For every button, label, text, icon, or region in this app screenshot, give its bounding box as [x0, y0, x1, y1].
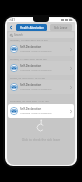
button[interactable]: Sick Leave [50, 24, 72, 31]
staticText: Health Attestation [20, 26, 44, 30]
button[interactable]: Self-Declaration [8, 80, 74, 94]
staticText: Search [14, 33, 23, 37]
staticText: Thursday, 08 April 2021 11:31 am [10, 99, 49, 102]
staticText: I declared I have no symptoms [20, 50, 52, 53]
staticText: Sick Leave [54, 26, 68, 30]
staticText: Self-Declaration [20, 45, 42, 49]
staticText: I declared I have no symptoms [20, 69, 52, 72]
staticText: Friday, 09 April 2021 10:10 am [10, 76, 46, 79]
button[interactable]: Search [8, 32, 74, 38]
button[interactable]: Self-Declaration [8, 61, 74, 75]
button[interactable]: Health Attestation [16, 24, 47, 31]
button[interactable]: Self-Declaration [8, 42, 74, 56]
button[interactable]: Self-Declaration [8, 104, 74, 118]
staticText: Click to check the sick leave [7, 138, 75, 142]
staticText: Monday, 12 April 2021 09:12 am [10, 38, 48, 41]
staticText: I declared I have no symptoms [20, 112, 52, 115]
button[interactable]: Back [8, 25, 13, 30]
staticText: I declared I have no symptoms [20, 88, 52, 91]
staticText: Self-Declaration [20, 107, 42, 111]
staticText: Self-Declaration [20, 64, 42, 68]
staticText: Sunday, 11 April 2021 08:40 am [10, 57, 47, 60]
staticText: Self-Declaration [20, 83, 42, 87]
staticText: 9:41 [9, 18, 15, 22]
